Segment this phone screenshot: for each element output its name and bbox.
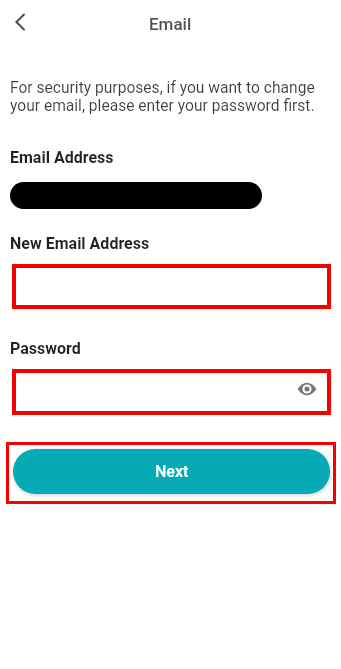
staticText: Password [10, 339, 81, 358]
button[interactable] [12, 264, 331, 309]
staticText: Email Address [10, 148, 114, 167]
button[interactable]: Next [13, 449, 330, 494]
staticText: Email [149, 14, 192, 34]
button[interactable] [0, 2, 40, 42]
button[interactable] [12, 369, 331, 415]
staticText: Next [155, 462, 189, 481]
staticText: New Email Address [10, 234, 150, 253]
staticText: For security purposes, if you want to ch… [10, 79, 315, 115]
